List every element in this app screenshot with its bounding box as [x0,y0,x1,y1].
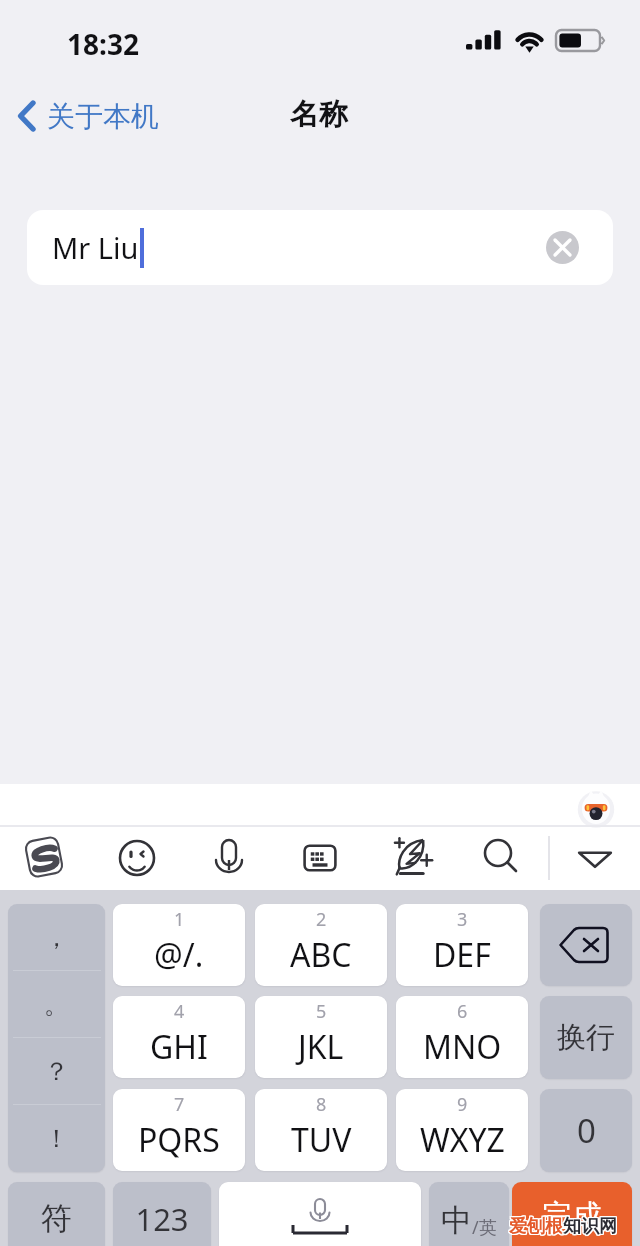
button[interactable]: 关于本机 [10,82,165,150]
staticText: 完成 [542,1197,602,1235]
staticText: 爱刨根 [509,1215,563,1238]
staticText: JKL [298,1025,344,1069]
staticText: /英 [472,1215,497,1240]
staticText: 换行 [557,1019,615,1056]
button[interactable]: ！ [8,1105,105,1172]
staticText: GHI [150,1025,208,1069]
button[interactable]: Keyboard layout [298,836,342,880]
staticText: 4 [174,999,185,1024]
staticText: 知识网 [563,1216,617,1239]
button[interactable]: Voice input [207,835,251,879]
staticText: 5 [316,999,327,1024]
button[interactable]: 3 [396,904,528,986]
staticText: 知识网 [562,1215,616,1238]
staticText: 知识网 [563,1215,617,1238]
staticText: 知识网 [564,1215,618,1238]
staticText: DEF [433,933,491,977]
staticText: 关于本机 [47,99,159,134]
button[interactable]: 6 [396,996,528,1078]
staticText: 爱刨根 [510,1214,564,1237]
staticText: 爱刨根 [510,1216,564,1239]
staticText: ？ [44,1056,69,1087]
button[interactable]: 4 [113,996,245,1078]
staticText: 18:32 [67,25,139,63]
button[interactable]: 完成 [512,1182,632,1246]
staticText: 名称 [290,96,348,133]
button[interactable]: 中 [429,1182,509,1246]
staticText: 爱刨根 [508,1214,562,1237]
staticText: 9 [457,1092,468,1117]
button[interactable]: 换行 [540,996,632,1079]
button[interactable]: Search [478,835,522,879]
staticText: 知识网 [563,1214,617,1237]
staticText: 知识网 [564,1214,618,1237]
button[interactable]: ， [8,904,105,970]
button[interactable]: Space [219,1182,421,1246]
staticText: ， [44,922,69,953]
button[interactable]: 2 [255,904,387,986]
staticText: TUV [291,1118,352,1162]
staticText: 6 [457,999,468,1024]
staticText: 爱刨根 [510,1215,564,1238]
staticText: 123 [135,1198,189,1240]
staticText: WXYZ [420,1118,505,1162]
button[interactable]: 7 [113,1089,245,1171]
button[interactable]: Mr Liu [27,210,613,285]
button[interactable]: Clear text [546,231,579,264]
staticText: 知识网 [564,1216,618,1239]
button[interactable]: 123 [113,1182,211,1246]
button[interactable]: Sogou input settings [22,835,66,879]
button[interactable]: Emoji [115,836,159,880]
staticText: ！ [44,1123,69,1154]
staticText: ABC [290,933,352,977]
staticText: 2 [316,907,327,932]
staticText: 知识网 [562,1214,616,1237]
button[interactable]: 1 [113,904,245,986]
staticText: 中 [441,1201,472,1240]
staticText: 符 [41,1199,72,1238]
button[interactable]: Backspace [540,904,632,986]
staticText: 爱刨根 [508,1215,562,1238]
staticText: 0 [577,1108,596,1153]
button[interactable]: ？ [8,1038,105,1104]
button[interactable]: Account [577,788,615,828]
button[interactable]: 0 [540,1089,632,1172]
staticText: 8 [316,1092,327,1117]
staticText: 3 [457,907,468,932]
button[interactable]: 8 [255,1089,387,1171]
staticText: @/. [154,933,204,977]
staticText: MNO [423,1025,502,1069]
staticText: 爱刨根 [508,1216,562,1239]
staticText: 1 [174,907,185,932]
button[interactable]: 5 [255,996,387,1078]
button[interactable]: Hide keyboard [573,836,617,880]
button[interactable]: AI writing [388,833,432,877]
staticText: 爱刨根 [509,1216,563,1239]
button[interactable]: 9 [396,1089,528,1171]
staticText: 知识网 [562,1216,616,1239]
staticText: 7 [174,1092,185,1117]
button[interactable]: 。 [8,971,105,1037]
staticText: 爱刨根 [509,1214,563,1237]
staticText: Mr Liu [52,228,139,267]
staticText: PQRS [138,1118,220,1162]
staticText: 。 [44,989,69,1020]
button[interactable]: 符 [8,1182,105,1246]
